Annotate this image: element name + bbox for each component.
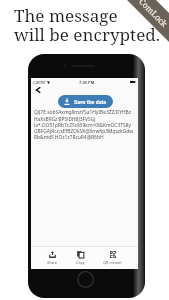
- staticText: Save the data: [74, 99, 107, 105]
- staticText: Copy: [76, 260, 85, 265]
- staticText: Share: [47, 260, 57, 265]
- staticText: QlJ7E.sobSAxmg8mzYSa1HyIBe3ZZ;DYHBz HaXs…: [34, 109, 138, 140]
- staticText: QR convert: [103, 260, 122, 265]
- button[interactable]: Copy: [73, 250, 88, 266]
- staticText: 7:45 PM: [79, 80, 95, 85]
- staticText: ComLock: [137, 0, 169, 29]
- button[interactable]: Back: [32, 85, 43, 95]
- button[interactable]: Share: [44, 250, 60, 266]
- staticText: The message: [14, 4, 118, 27]
- staticText: Carrier: [33, 79, 46, 85]
- staticText: will be encrypted.: [14, 23, 161, 46]
- button[interactable]: QR convert: [100, 250, 125, 266]
- button[interactable]: Save the data: [58, 95, 113, 108]
